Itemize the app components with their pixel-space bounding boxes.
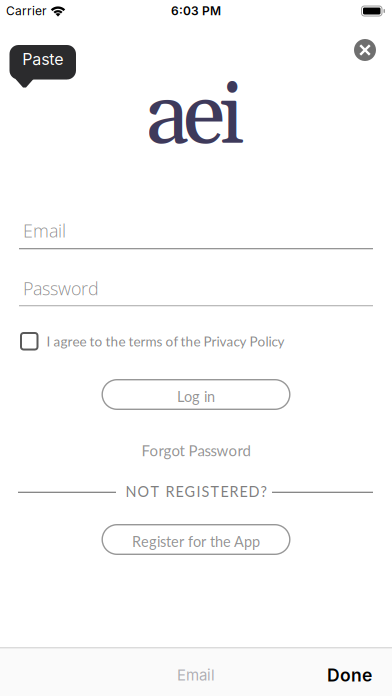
button[interactable]: Password [19,276,373,306]
button[interactable]: Register for the App [101,524,290,555]
staticText: N O T R E G I S T E R E D ? [125,483,266,500]
staticText: 6:03 PM [171,4,221,18]
button[interactable]: Paste [9,45,76,89]
staticText: Email [177,666,215,684]
button[interactable]: Close [354,39,376,61]
button[interactable]: Forgot Password [141,441,250,459]
staticText: Email [23,218,66,243]
staticText: Log in [177,388,215,405]
button[interactable]: I agree to the terms of the Privacy Poli… [20,332,284,350]
staticText: I agree to the terms of the Privacy Poli… [46,333,284,349]
button[interactable]: Email [19,218,373,249]
staticText: Paste [22,49,63,69]
staticText: Carrier [6,4,47,18]
staticText: aei [145,61,245,173]
staticText: Done [327,664,372,686]
staticText: Password [23,276,99,300]
button[interactable]: Log in [101,379,290,410]
staticText: Register for the App [132,533,260,550]
button[interactable]: Done [327,664,392,686]
staticText: Forgot Password [141,441,250,459]
